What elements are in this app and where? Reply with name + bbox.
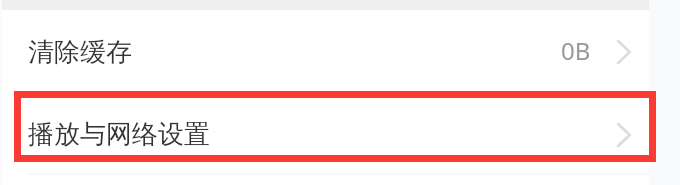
staticText: 0B xyxy=(561,34,591,67)
staticText: 播放与网络设置 xyxy=(28,118,210,151)
button[interactable]: 播放与网络设置 xyxy=(2,92,649,173)
button[interactable]: 清除缓存 xyxy=(2,10,649,92)
other: 清除缓存 xyxy=(616,39,631,65)
other: 播放与网络设置 xyxy=(616,122,631,148)
staticText: 清除缓存 xyxy=(28,36,132,69)
